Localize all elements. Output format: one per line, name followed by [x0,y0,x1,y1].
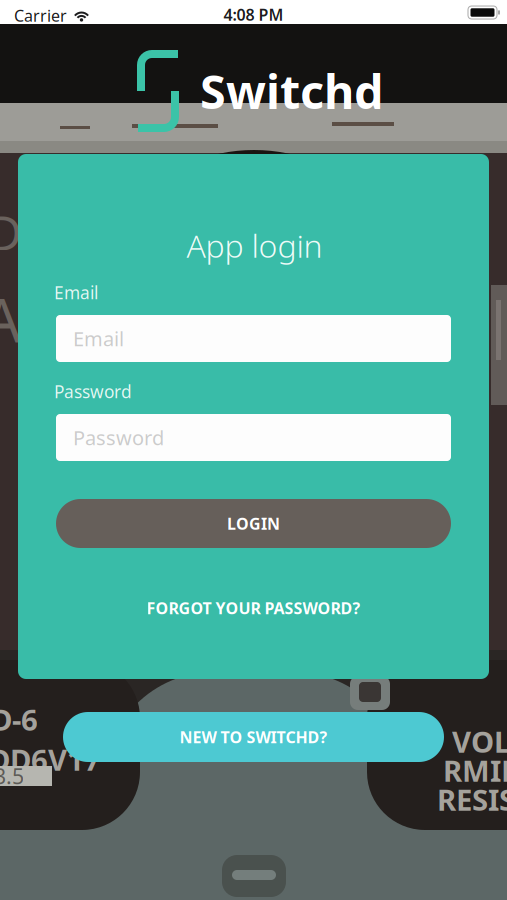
staticText: 4:08 PM [223,4,283,25]
button[interactable]: NEW TO SWITCHD? [63,712,444,762]
staticText: LOGIN [227,513,280,534]
staticText: Email [73,325,124,352]
staticText: 3.5 [0,762,24,790]
staticText: Carrier [14,5,67,26]
staticText: FORGOT YOUR PASSWORD? [146,597,360,619]
button[interactable]: LOGIN [56,499,451,548]
staticText: App login [186,224,322,266]
staticText: RESISTO [437,780,507,819]
staticText: Password [73,424,164,451]
staticText: NEW TO SWITCHD? [179,726,327,748]
staticText: DD6V17 [0,740,101,779]
staticText: D-6 [0,700,38,739]
button[interactable]: Email [56,315,451,362]
staticText: Email [54,281,98,304]
button[interactable]: FORGOT YOUR PASSWORD? [56,596,451,620]
staticText: Switchd [200,60,383,122]
staticText: Password [54,380,132,403]
staticText: VOLTS [452,722,507,761]
staticText: A [0,278,21,359]
staticText: RMINAL [443,751,507,790]
button[interactable]: Password [56,414,451,461]
staticText: D [0,200,22,264]
